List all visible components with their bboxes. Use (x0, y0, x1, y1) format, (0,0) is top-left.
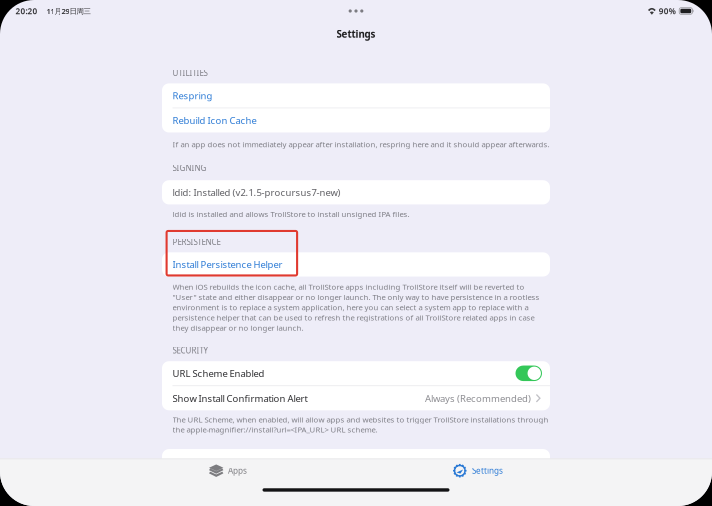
staticText: Rebuild Icon Cache (172, 114, 256, 127)
staticText: When iOS rebuilds the icon cache, all Tr… (172, 281, 539, 333)
staticText: PERSISTENCE (172, 236, 220, 247)
staticText: Install Persistence Helper (172, 258, 282, 271)
staticText: The URL Scheme, when enabled, will allow… (172, 414, 548, 435)
button[interactable]: Show Install Confirmation Alert (162, 386, 550, 410)
staticText: Settings (336, 27, 375, 41)
button[interactable]: Apps (197, 459, 259, 482)
button[interactable]: Respring (162, 83, 550, 108)
staticText: SECURITY (172, 345, 208, 356)
button[interactable]: Rebuild Icon Cache (162, 108, 550, 132)
button[interactable]: Settings (441, 459, 515, 482)
staticText: Show Install Confirmation Alert (172, 392, 307, 405)
staticText: Respring (172, 89, 212, 102)
button[interactable]: URL Scheme Enabled (515, 366, 542, 381)
staticText: ldid is installed and allows TrollStore … (172, 209, 409, 219)
staticText: SIGNING (172, 162, 206, 173)
staticText: If an app does not immediately appear af… (172, 139, 549, 149)
staticText: ldid: Installed (v2.1.5-procursus7-new) (172, 186, 340, 199)
staticText: 90% (659, 5, 676, 17)
button[interactable]: Install Persistence Helper (162, 252, 550, 277)
staticText: Always (Recommended) (425, 392, 531, 405)
staticText: 11月29日周三 (46, 6, 90, 16)
staticText: URL Scheme Enabled (172, 367, 264, 380)
staticText: UTILITIES (172, 67, 207, 78)
staticText: Settings (472, 465, 503, 476)
staticText: Apps (228, 465, 247, 476)
staticText: 20:20 (15, 5, 37, 17)
